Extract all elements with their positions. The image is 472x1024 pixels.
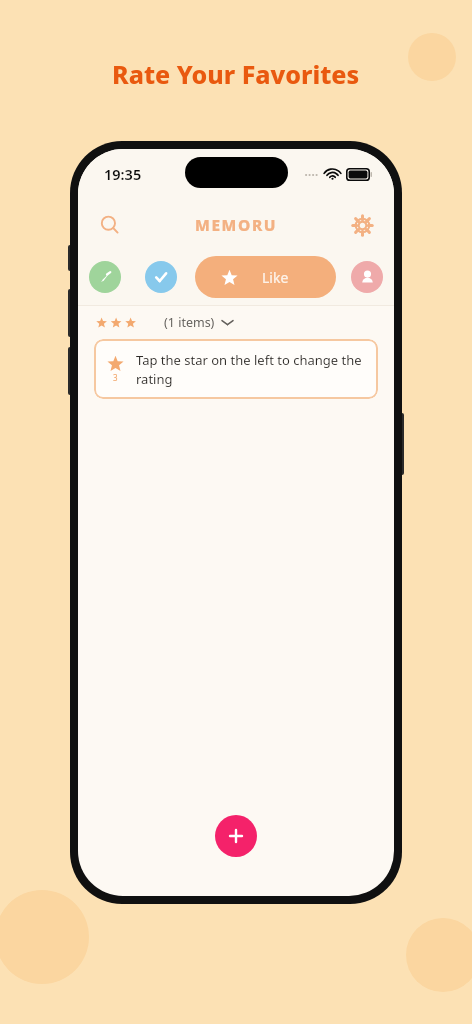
button[interactable]: (1 items) [162, 314, 235, 331]
button[interactable]: Search [90, 205, 130, 245]
button[interactable]: Add new item [215, 815, 257, 857]
staticText: (1 items) [164, 314, 215, 331]
staticText: Like [262, 268, 289, 287]
staticText: Tap the star on the left to change the r… [136, 351, 362, 388]
button[interactable]: Change rating [94, 355, 136, 383]
button[interactable]: Like [195, 256, 336, 298]
button[interactable]: Change rating [94, 339, 378, 399]
button[interactable]: Notes [89, 261, 121, 293]
staticText: 3 [113, 372, 118, 383]
button[interactable]: Settings [342, 205, 382, 245]
button[interactable]: Tasks [145, 261, 177, 293]
staticText: Rate Your Favorites [112, 57, 360, 91]
button[interactable]: Profile [351, 261, 383, 293]
staticText: MEMORU [195, 214, 278, 235]
staticText: 19:35 [104, 164, 142, 184]
